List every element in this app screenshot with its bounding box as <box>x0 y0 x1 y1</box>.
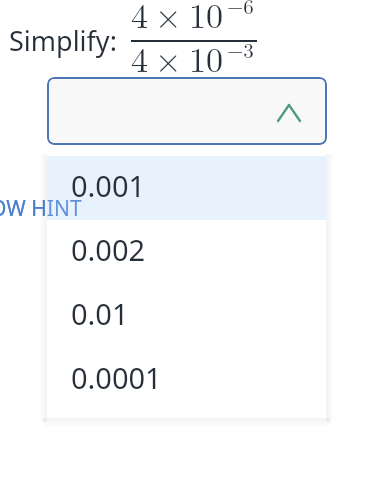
staticText: 0.001 <box>71 166 146 205</box>
staticText: −6 <box>227 0 254 20</box>
staticText: SHOW HINT <box>0 194 82 223</box>
staticText: × <box>155 0 182 38</box>
staticText: 0.0001 <box>71 358 162 397</box>
staticText: Simplify: <box>9 22 117 59</box>
staticText: 4 <box>131 0 148 38</box>
staticText: 4 <box>131 34 148 82</box>
staticText: 10 <box>189 34 223 82</box>
staticText: × <box>155 34 182 82</box>
button[interactable]: 0.002 <box>47 220 326 284</box>
staticText: 0.01 <box>71 294 129 333</box>
button[interactable]: 0.001 <box>47 156 326 220</box>
staticText: 0.002 <box>71 230 146 269</box>
staticText: 10 <box>189 0 223 38</box>
button[interactable]: 0.0001 <box>47 348 326 412</box>
button[interactable]: Close answer list <box>47 77 327 145</box>
staticText: −3 <box>227 34 254 64</box>
button[interactable]: 0.01 <box>47 284 326 348</box>
button[interactable]: SHOW HINT <box>0 194 82 223</box>
